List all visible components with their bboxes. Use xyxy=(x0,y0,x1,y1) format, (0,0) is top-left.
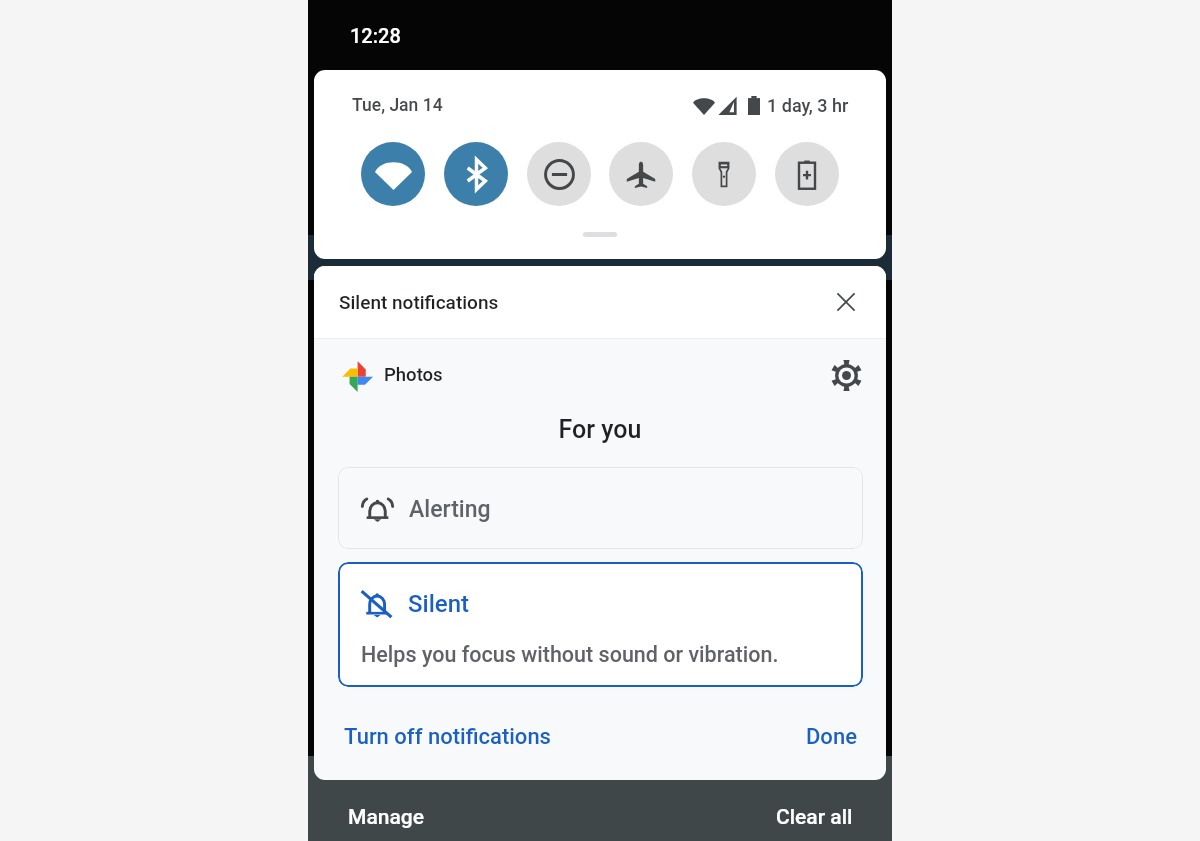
staticText: 1 day, 3 hr xyxy=(767,95,849,116)
staticText: Done xyxy=(806,724,857,750)
button[interactable]: Silent notifications xyxy=(339,266,863,338)
button[interactable]: Bluetooth xyxy=(444,142,508,206)
staticText: Silent xyxy=(408,590,469,618)
staticText: Alerting xyxy=(409,496,491,523)
button[interactable]: Airplane mode xyxy=(609,142,673,206)
staticText: Manage xyxy=(348,805,424,830)
staticText: Silent notifications xyxy=(339,291,499,313)
button[interactable]: Turn off notifications xyxy=(344,724,551,750)
staticText: Turn off notifications xyxy=(344,724,551,750)
button[interactable]: Flashlight xyxy=(692,142,756,206)
button[interactable]: Notification settings xyxy=(827,356,865,394)
button[interactable]: Battery saver xyxy=(775,142,839,206)
button[interactable]: Clear all xyxy=(776,805,853,830)
button[interactable]: Alerting xyxy=(338,467,863,549)
staticText: For you xyxy=(314,415,886,444)
button[interactable]: Manage xyxy=(348,805,424,830)
button[interactable]: Wi-Fi xyxy=(361,142,425,206)
button[interactable]: Silent xyxy=(338,562,863,687)
button[interactable]: Do not disturb xyxy=(527,142,591,206)
staticText: Photos xyxy=(384,364,443,386)
staticText: Clear all xyxy=(776,805,853,830)
staticText: Helps you focus without sound or vibrati… xyxy=(361,642,779,667)
button[interactable]: Close xyxy=(829,285,863,319)
button[interactable]: Done xyxy=(806,724,857,750)
staticText: Tue, Jan 14 xyxy=(352,95,443,116)
staticText: 12:28 xyxy=(350,24,401,47)
